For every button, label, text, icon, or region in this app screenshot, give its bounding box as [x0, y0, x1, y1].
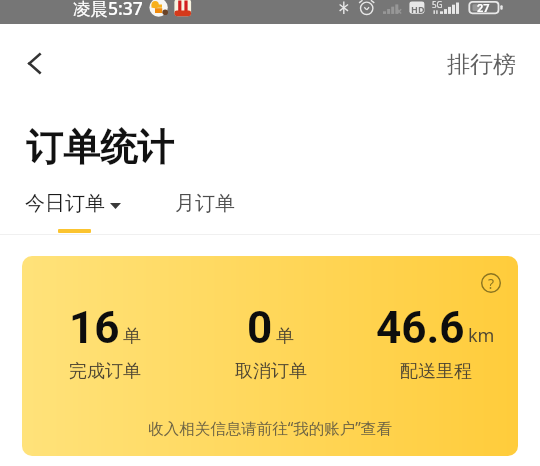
- staticText: 今日订单: [25, 191, 105, 216]
- button[interactable]: 排行榜: [437, 44, 526, 85]
- staticText: 单: [123, 325, 141, 348]
- staticText: 凌晨5:37: [73, 0, 143, 20]
- button[interactable]: 月订单: [164, 186, 246, 221]
- staticText: ?: [488, 274, 495, 293]
- staticText: 16: [69, 302, 120, 354]
- staticText: 月订单: [175, 191, 235, 216]
- staticText: 27: [477, 2, 490, 15]
- staticText: 单: [276, 325, 294, 348]
- staticText: 取消订单: [235, 360, 307, 383]
- staticText: 收入相关信息请前往“我的账户”查看: [22, 417, 518, 438]
- staticText: 5G: [432, 0, 443, 10]
- button[interactable]: Help: [22, 256, 518, 456]
- staticText: HD: [411, 3, 425, 15]
- button[interactable]: 今日订单: [14, 186, 132, 221]
- staticText: 完成订单: [69, 360, 141, 383]
- button[interactable]: Back: [12, 41, 56, 85]
- button[interactable]: Help: [477, 269, 505, 297]
- staticText: 46.6: [376, 302, 465, 354]
- staticText: 配送里程: [400, 360, 472, 383]
- staticText: 排行榜: [447, 50, 516, 79]
- staticText: 订单统计: [26, 124, 174, 171]
- staticText: km: [468, 323, 495, 348]
- staticText: 0: [247, 302, 273, 354]
